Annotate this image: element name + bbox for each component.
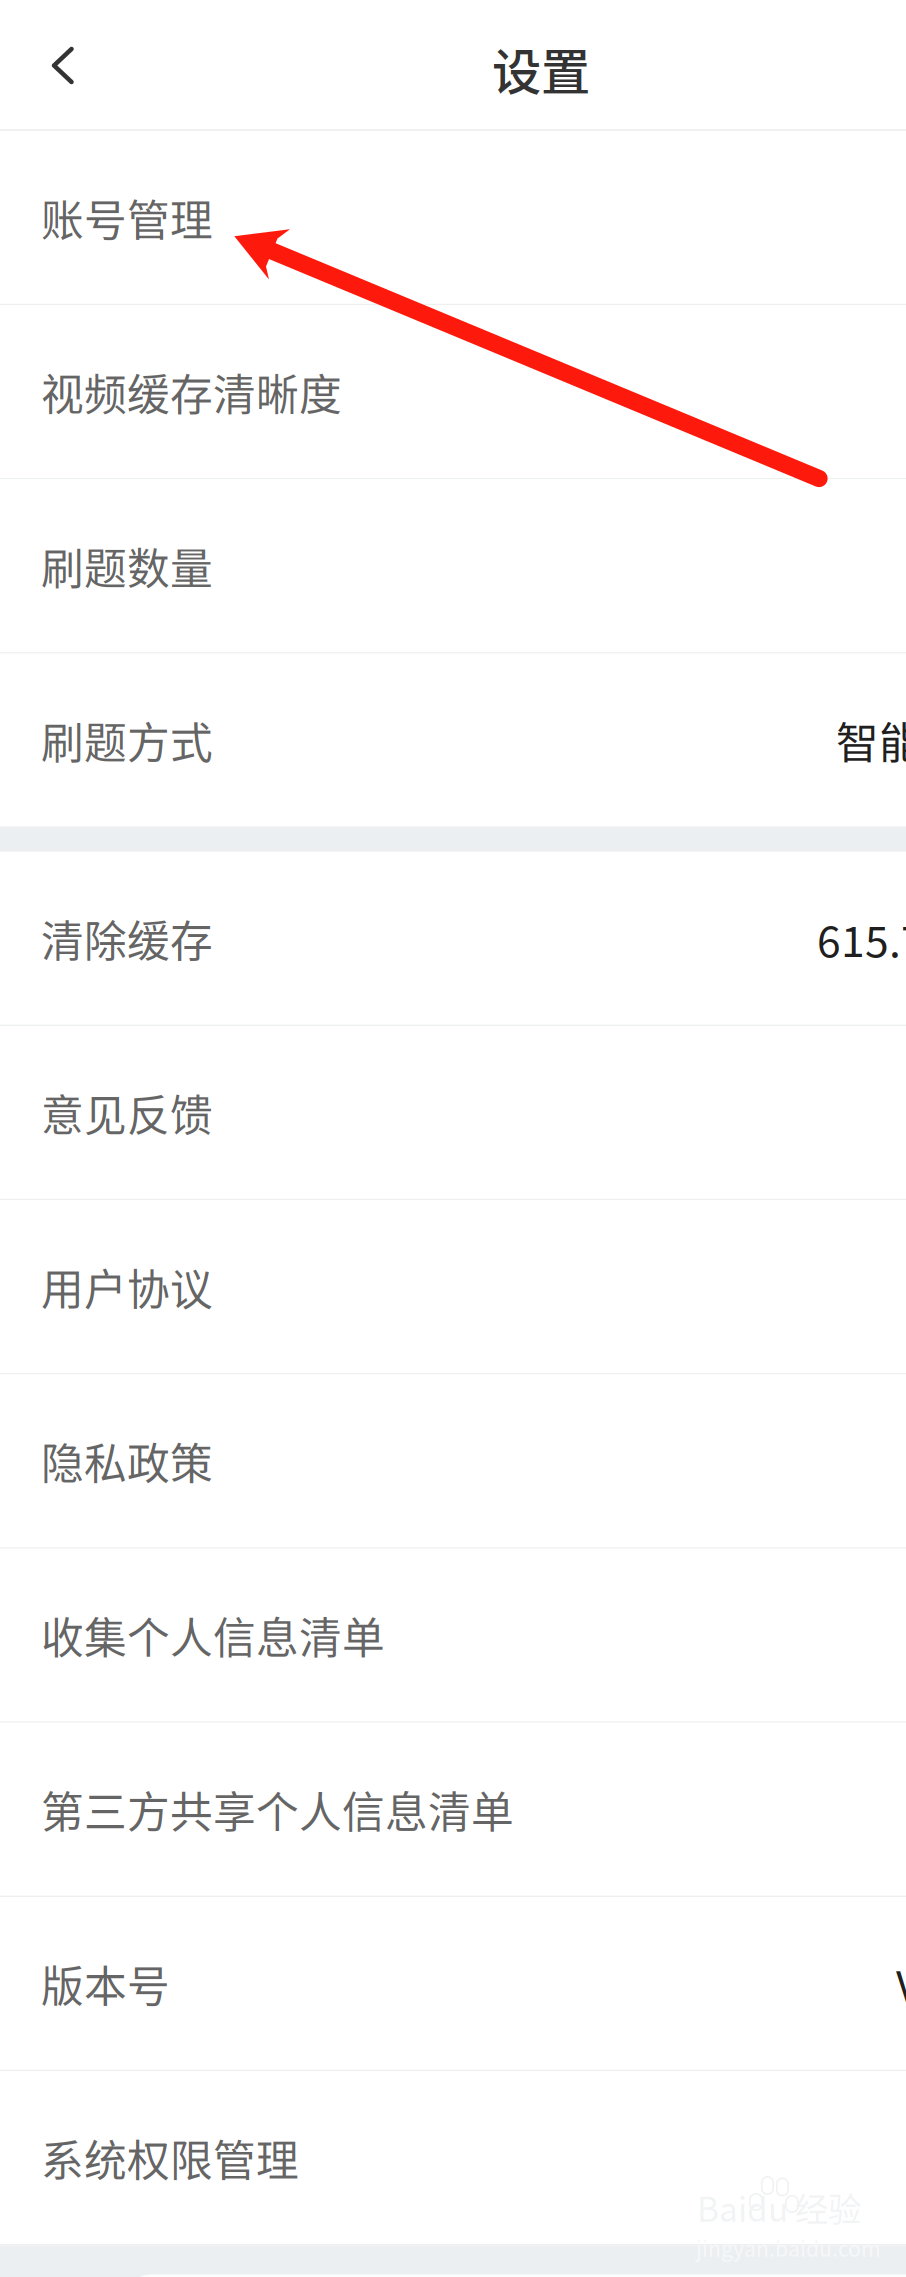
button[interactable]: 清除缓存 xyxy=(0,852,906,1026)
staticText: 收集个人信息清单 xyxy=(41,1604,385,1666)
button[interactable]: 账号管理 xyxy=(0,131,906,305)
button[interactable]: 隐私政策 xyxy=(0,1374,906,1549)
button[interactable]: 版本号 xyxy=(0,1897,906,2071)
staticText: 账号管理 xyxy=(41,187,213,248)
button[interactable]: 系统权限管理 xyxy=(0,2071,906,2245)
staticText: 视频缓存清晰度 xyxy=(41,361,342,423)
button[interactable]: 视频缓存清晰度 xyxy=(0,305,906,479)
staticText: 设置 xyxy=(492,33,590,104)
staticText: 用户协议 xyxy=(41,1256,213,1318)
staticText: 版本号 xyxy=(41,1953,170,2014)
button[interactable]: 刷题方式 xyxy=(0,654,906,828)
staticText: Baidu 经验 xyxy=(697,2183,861,2231)
button[interactable]: 第三方共享个人信息清单 xyxy=(0,1723,906,1897)
staticText: 系统权限管理 xyxy=(41,2127,299,2189)
staticText: 615.74MB xyxy=(817,907,906,969)
button[interactable]: Back xyxy=(0,0,130,129)
staticText: jingyan.baidu.com xyxy=(696,2232,881,2263)
button[interactable]: 收集个人信息清单 xyxy=(0,1549,906,1723)
staticText: 意见反馈 xyxy=(41,1082,213,1143)
button[interactable]: 意见反馈 xyxy=(0,1026,906,1200)
staticText: 智能模式 xyxy=(836,709,906,771)
staticText: 隐私政策 xyxy=(41,1430,213,1492)
staticText: 刷题方式 xyxy=(41,709,213,771)
staticText: 第三方共享个人信息清单 xyxy=(41,1778,514,1840)
staticText: 清除缓存 xyxy=(41,907,213,969)
staticText: 刷题数量 xyxy=(41,535,213,597)
staticText: V3.2.1 xyxy=(896,1953,906,2014)
button[interactable]: 用户协议 xyxy=(0,1200,906,1374)
button[interactable]: 刷题数量 xyxy=(0,479,906,654)
